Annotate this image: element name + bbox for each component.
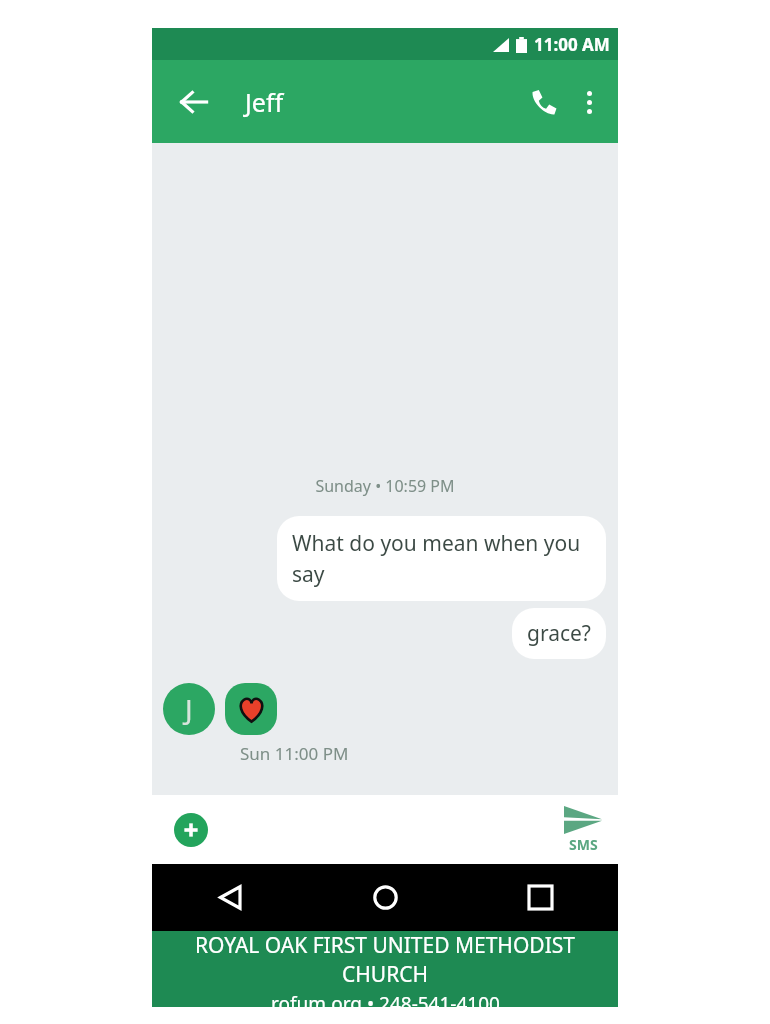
staticText: Sun 11:00 PM xyxy=(240,742,349,765)
staticText: rofum.org • 248-541-4100 xyxy=(271,991,500,1007)
staticText: Jeff xyxy=(245,85,284,119)
button[interactable]: Recent apps xyxy=(463,864,618,931)
button[interactable]: Contact avatar J xyxy=(163,683,215,735)
button[interactable]: grace? xyxy=(512,608,606,659)
button[interactable]: Call xyxy=(520,78,568,126)
staticText: ROYAL OAK FIRST UNITED METHODIST CHURCH xyxy=(152,931,618,989)
button[interactable]: Back xyxy=(172,80,216,124)
staticText: What do you mean when you say xyxy=(292,529,591,588)
button[interactable] xyxy=(225,683,277,735)
button[interactable]: What do you mean when you say xyxy=(277,516,606,601)
staticText: Sunday • 10:59 PM xyxy=(152,475,618,497)
button[interactable]: Home xyxy=(308,864,463,931)
button[interactable]: Add attachment xyxy=(174,813,208,847)
staticText: grace? xyxy=(527,619,591,648)
staticText: J xyxy=(185,690,193,728)
staticText: 11:00 AM xyxy=(534,33,610,56)
button[interactable]: Back xyxy=(152,864,308,931)
button[interactable]: Send SMS xyxy=(564,806,602,854)
staticText: SMS xyxy=(569,835,598,854)
button[interactable]: More options xyxy=(568,81,610,123)
